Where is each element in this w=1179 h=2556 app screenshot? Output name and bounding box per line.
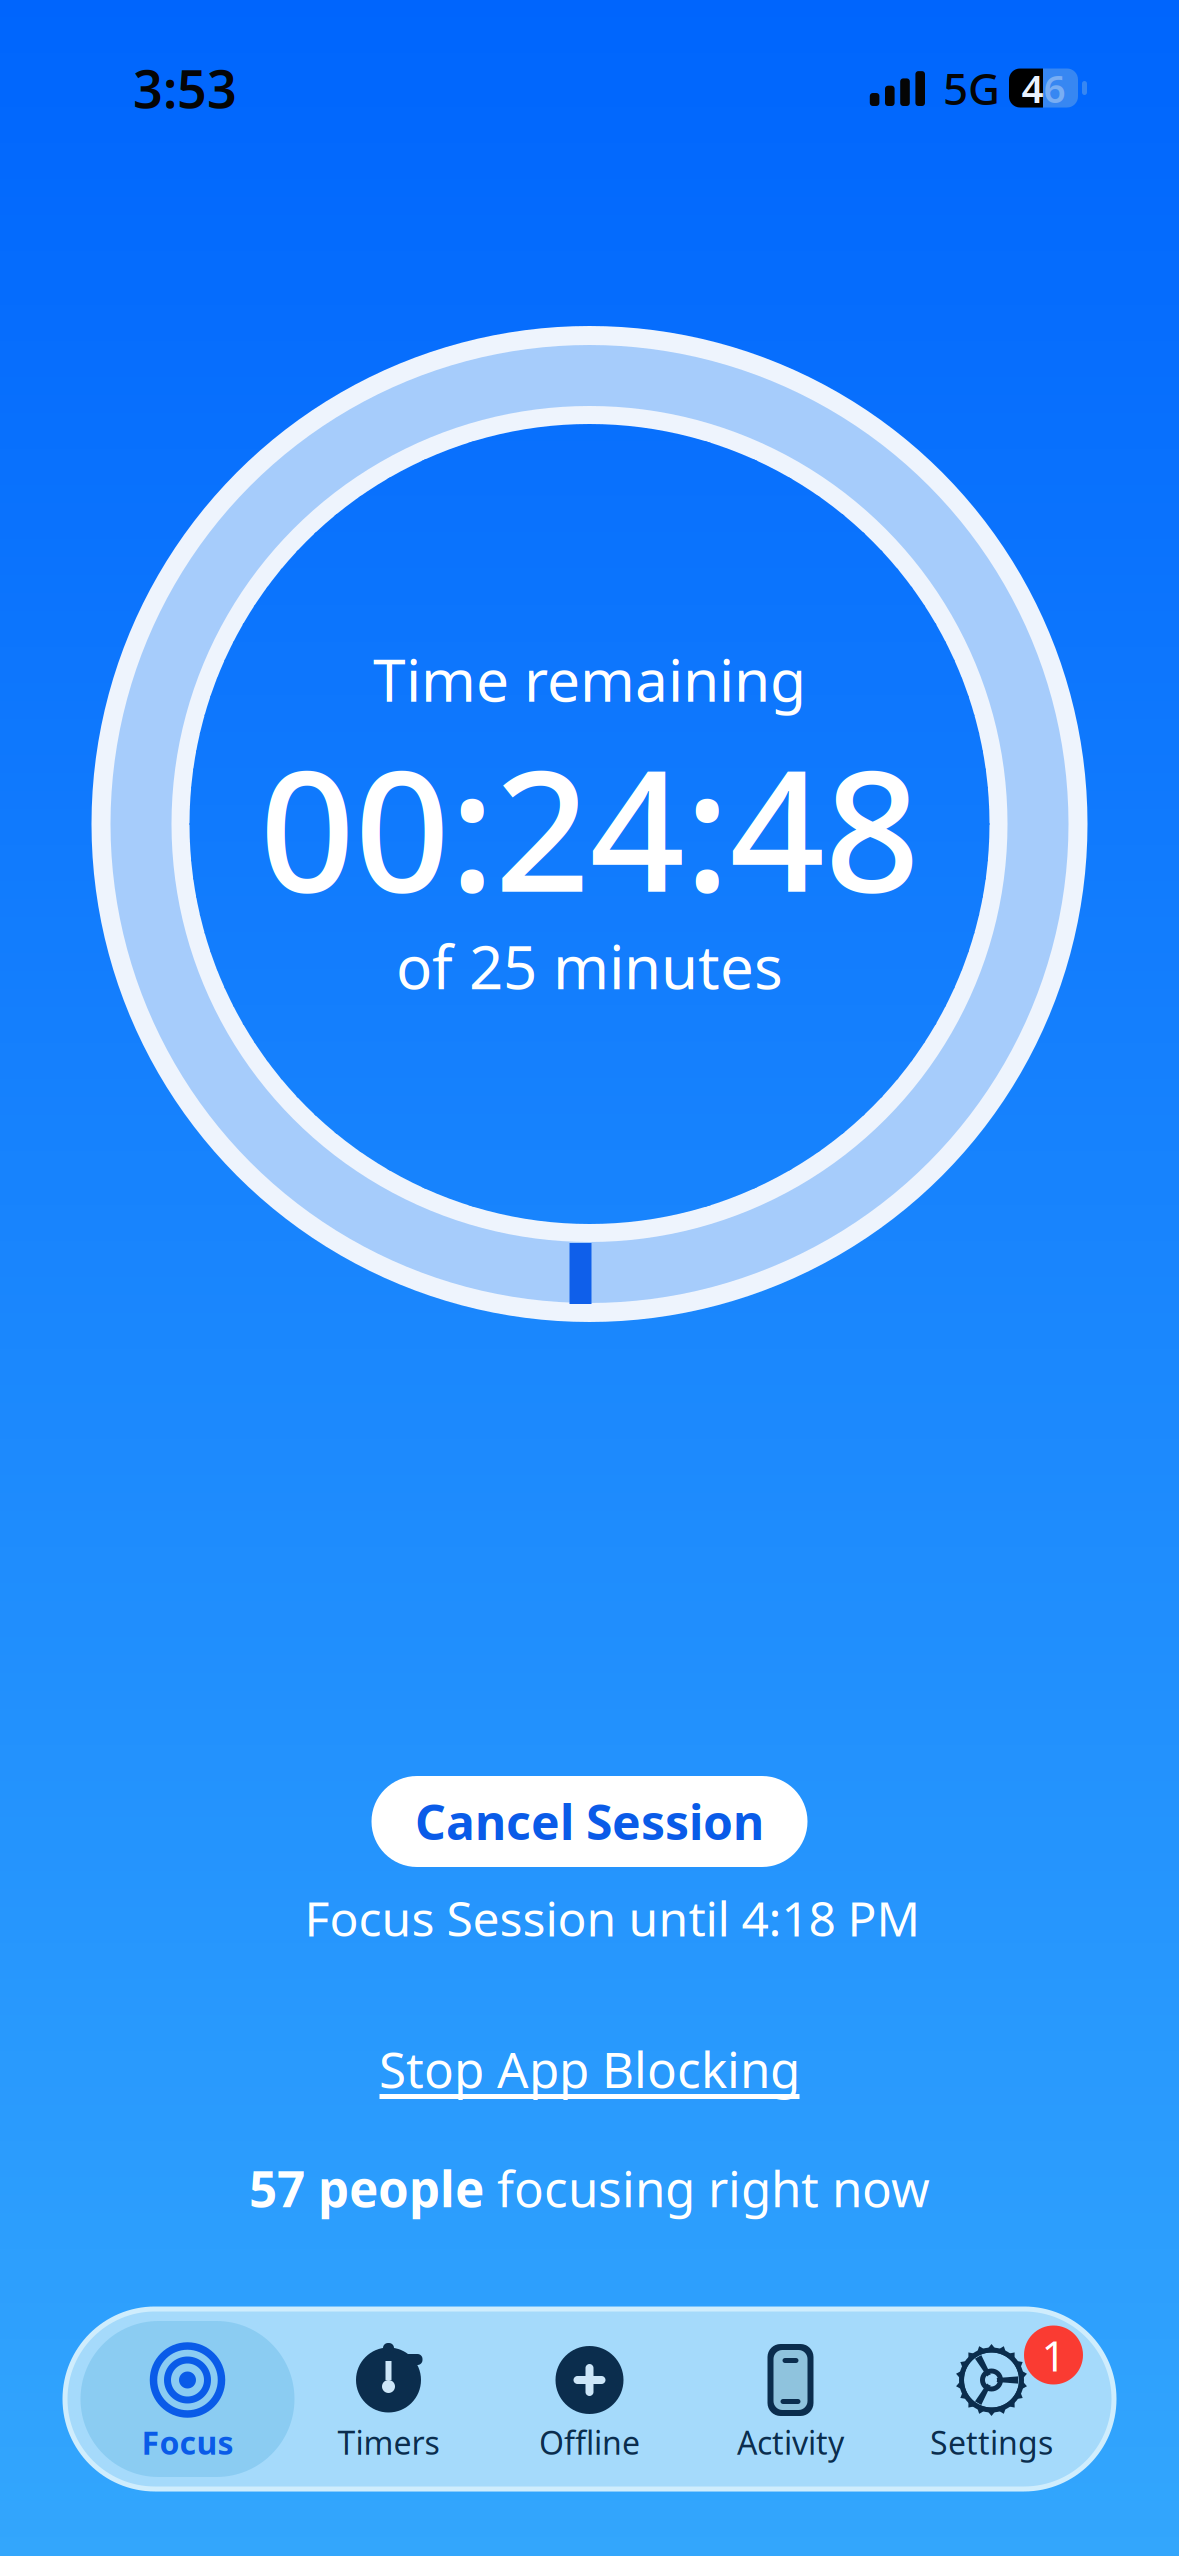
staticText: of 25 minutes (396, 926, 783, 1006)
staticText: 3:53 (133, 53, 237, 123)
button[interactable]: Cancel Session (371, 1776, 807, 1867)
staticText: 1 (1041, 2327, 1065, 2383)
staticText: Stop App Blocking (379, 2036, 800, 2101)
button[interactable]: Focus (87, 2309, 288, 2489)
staticText: 57 people focusing right now (249, 2155, 930, 2221)
staticText: Cancel Session (415, 1790, 764, 1853)
button[interactable]: Activity (690, 2309, 891, 2489)
button[interactable]: 1 (891, 2309, 1092, 2489)
staticText: Timers (337, 2421, 439, 2463)
button[interactable]: Stop App Blocking (0, 2036, 1179, 2116)
staticText: Offline (539, 2421, 640, 2463)
staticText: 4 (1021, 62, 1043, 114)
staticText: Focus (141, 2421, 233, 2463)
staticText: Focus Session until 4:18 PM (304, 1886, 920, 1950)
staticText: Settings (930, 2421, 1053, 2463)
staticText: Activity (737, 2421, 844, 2463)
staticText: Time remaining (373, 640, 806, 718)
staticText: 6 (1043, 62, 1065, 114)
staticText: 00:24:48 (259, 716, 919, 938)
button[interactable]: Timers (288, 2309, 489, 2489)
button[interactable]: Offline (489, 2309, 690, 2489)
staticText: 5G (943, 59, 1000, 117)
